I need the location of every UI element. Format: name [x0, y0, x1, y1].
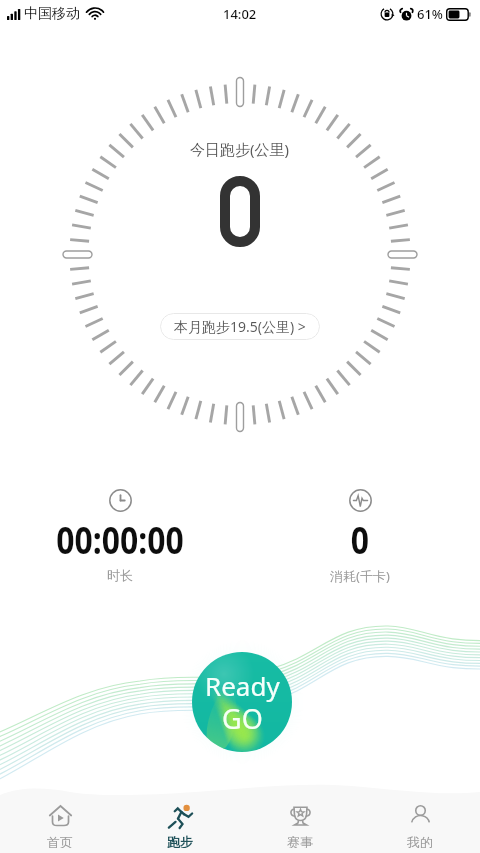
button[interactable]: Events — [240, 798, 360, 853]
staticText: Ready — [205, 668, 280, 703]
staticText: 我的 — [407, 834, 433, 848]
other: Rotation lock — [380, 7, 394, 21]
other: Profile — [408, 803, 433, 828]
staticText: 消耗(千卡) — [330, 567, 390, 585]
staticText: 00:00:00 — [56, 513, 184, 565]
button[interactable]: Home — [0, 798, 120, 853]
other: Run — [168, 803, 193, 828]
staticText: 本月跑步19.5(公里) > — [174, 317, 306, 336]
staticText: 14:02 — [223, 5, 257, 23]
staticText: GO — [222, 700, 263, 737]
staticText: 跑步 — [167, 834, 193, 848]
staticText: 首页 — [47, 834, 73, 848]
staticText: 0 — [351, 513, 369, 565]
staticText: 时长 — [107, 567, 133, 583]
other: Events — [288, 803, 313, 828]
staticText: 61% — [417, 5, 443, 23]
button[interactable]: Profile — [360, 798, 480, 853]
other: Home — [48, 803, 73, 828]
button[interactable]: Ready — [192, 652, 292, 752]
staticText: 今日跑步(公里) — [190, 139, 290, 159]
staticText: 赛事 — [287, 834, 313, 848]
other: Alarm — [400, 8, 413, 21]
staticText: 中国移动 — [24, 5, 80, 23]
button[interactable]: 本月跑步19.5(公里) > — [160, 313, 320, 340]
button[interactable]: Run — [120, 798, 240, 853]
